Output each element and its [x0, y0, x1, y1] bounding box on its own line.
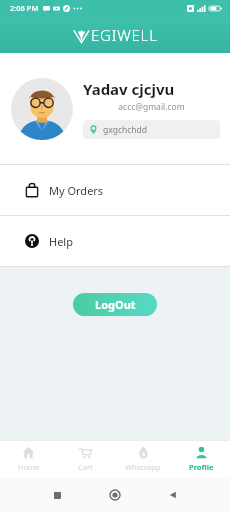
staticText: LogOut	[95, 297, 136, 312]
staticText: EGIWELL	[91, 25, 158, 45]
button[interactable]: Whatsapp	[114, 440, 172, 478]
button[interactable]: Back	[164, 486, 182, 504]
staticText: My Orders	[49, 183, 104, 198]
staticText: gxgchchdd	[103, 124, 148, 136]
staticText: Profile	[189, 462, 214, 472]
button[interactable]: LogOut	[73, 293, 157, 316]
staticText: Help	[49, 234, 73, 249]
button[interactable]: Help	[0, 216, 230, 266]
button[interactable]: gxgchchdd	[83, 120, 220, 139]
staticText: accc@gmail.com	[83, 101, 220, 113]
staticText: Cart	[78, 462, 93, 472]
button[interactable]: Home	[106, 486, 124, 504]
button[interactable]: My Orders	[0, 165, 230, 215]
button[interactable]: Profile	[172, 440, 230, 478]
button[interactable]: Cart	[57, 440, 114, 478]
staticText: Whatsapp	[125, 462, 161, 472]
staticText: 2:06 PM	[10, 3, 39, 13]
staticText: Home	[18, 462, 40, 472]
button[interactable]: Recent apps	[48, 486, 66, 504]
button[interactable]: Home	[0, 440, 57, 478]
staticText: Yadav cjcjvu	[83, 79, 220, 99]
